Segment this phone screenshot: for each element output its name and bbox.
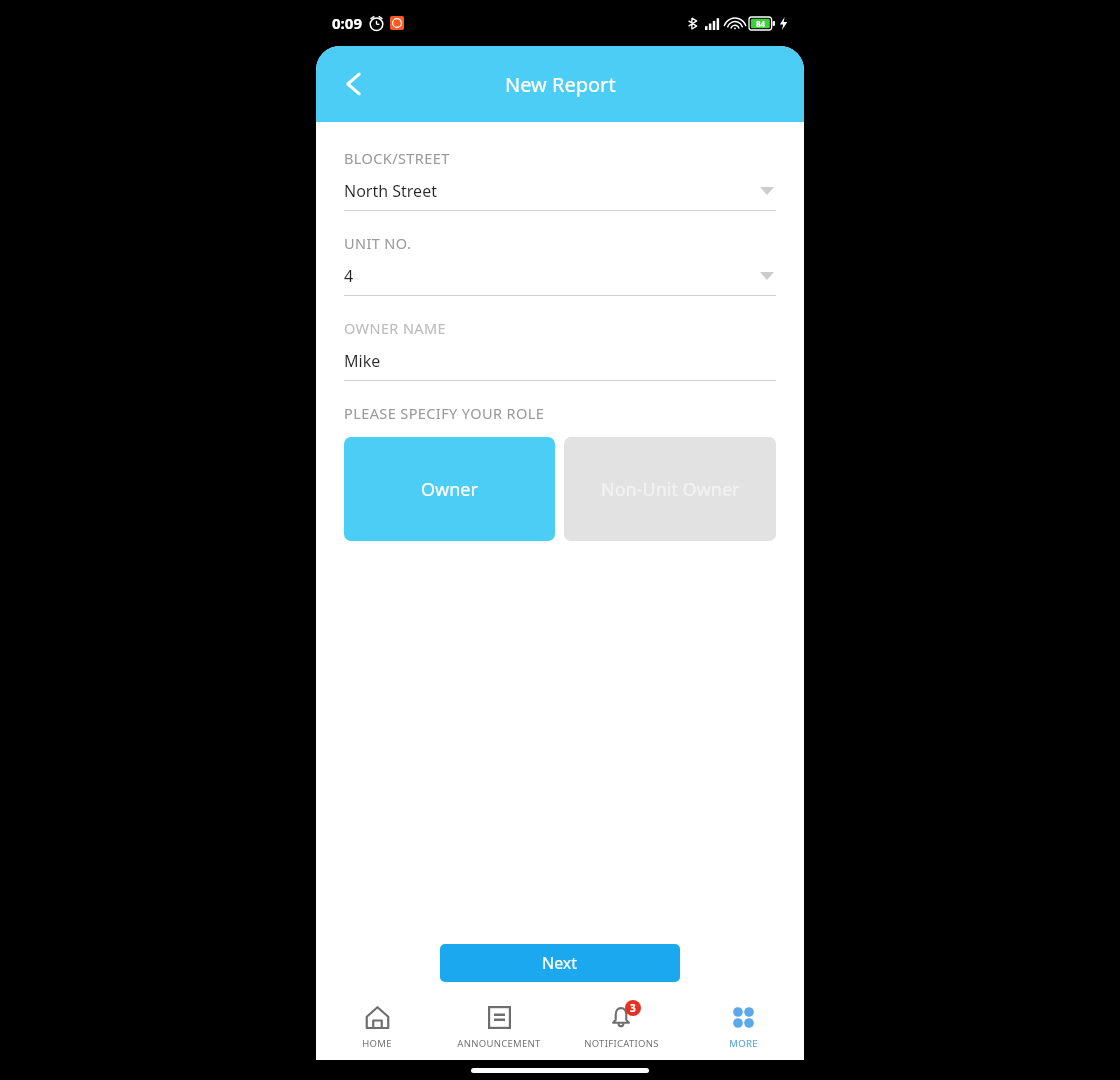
button[interactable]: ANNOUNCEMENT: [438, 996, 560, 1056]
button[interactable]: HOME: [316, 996, 438, 1056]
staticText: Next: [542, 952, 578, 974]
staticText: OWNER NAME: [344, 318, 447, 338]
button[interactable]: Owner: [344, 437, 555, 541]
staticText: 84: [756, 18, 766, 29]
staticText: 3: [630, 1001, 636, 1015]
button[interactable]: OWNER NAME: [344, 318, 776, 381]
button[interactable]: Next: [440, 944, 680, 982]
staticText: NOTIFICATIONS: [584, 1037, 659, 1050]
staticText: MORE: [729, 1037, 758, 1050]
staticText: 0:09: [332, 13, 362, 33]
staticText: BLOCK/STREET: [344, 148, 450, 168]
button[interactable]: Back: [330, 60, 378, 108]
button[interactable]: UNIT NO.: [344, 233, 776, 296]
staticText: Owner: [421, 477, 478, 502]
button[interactable]: MORE: [682, 996, 804, 1056]
staticText: Mike: [344, 350, 381, 372]
button[interactable]: 3: [560, 996, 682, 1056]
staticText: UNIT NO.: [344, 233, 412, 253]
staticText: PLEASE SPECIFY YOUR ROLE: [344, 403, 545, 423]
staticText: HOME: [362, 1037, 392, 1050]
staticText: ANNOUNCEMENT: [457, 1037, 541, 1050]
button[interactable]: BLOCK/STREET: [344, 148, 776, 211]
staticText: 4: [344, 265, 354, 287]
staticText: North Street: [344, 180, 437, 202]
staticText: New Report: [505, 71, 616, 98]
staticText: Non-Unit Owner: [601, 477, 740, 502]
